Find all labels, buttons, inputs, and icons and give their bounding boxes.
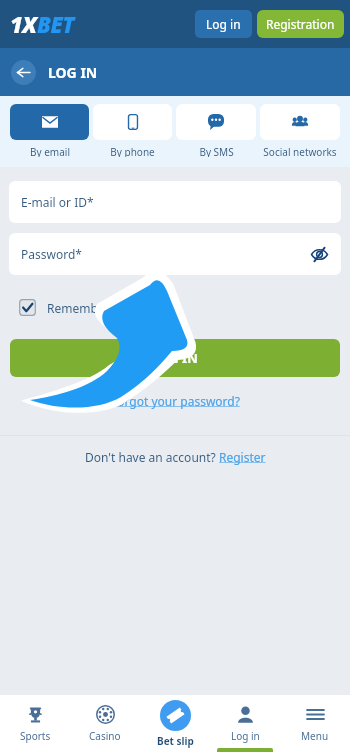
button[interactable]: Show password <box>307 242 331 266</box>
staticText: 1X <box>10 9 37 39</box>
staticText: By SMS <box>199 145 234 157</box>
button[interactable]: Forgot your password? <box>111 393 240 409</box>
staticText: Casino <box>89 729 121 743</box>
button[interactable]: Register <box>219 449 266 465</box>
staticText: Social networks <box>263 145 337 157</box>
staticText: By phone <box>110 145 155 157</box>
button[interactable]: Sports <box>0 695 70 752</box>
button[interactable]: Social networks <box>260 104 340 157</box>
staticText: BET <box>37 9 74 39</box>
staticText: By email <box>30 145 70 157</box>
staticText: Menu <box>301 729 329 743</box>
button[interactable]: Password* <box>9 233 341 275</box>
staticText: LOG IN <box>152 349 198 367</box>
staticText: Log in <box>206 16 241 32</box>
button[interactable]: LOG IN <box>10 339 340 377</box>
button[interactable]: By SMS <box>176 104 256 157</box>
button[interactable]: By phone <box>93 104 172 157</box>
staticText: Password* <box>21 246 82 262</box>
staticText: E-mail or ID* <box>21 194 94 210</box>
staticText: Remember me <box>47 300 131 316</box>
button[interactable]: Casino <box>70 695 140 752</box>
staticText: Registration <box>266 16 335 32</box>
staticText: Sports <box>20 729 51 743</box>
staticText: LOG IN <box>48 63 98 82</box>
button[interactable]: E-mail or ID* <box>9 181 341 223</box>
button[interactable]: By email <box>10 104 89 157</box>
button[interactable]: Bet slip <box>140 695 210 752</box>
button[interactable]: Log in <box>210 695 280 752</box>
staticText: Log in <box>231 729 260 743</box>
button[interactable]: Menu <box>280 695 350 752</box>
staticText: Bet slip <box>157 734 194 748</box>
button[interactable]: Registration <box>257 10 344 38</box>
staticText: Don't have an account? <box>85 449 219 465</box>
button[interactable]: Back <box>11 60 36 85</box>
button[interactable]: Remember me <box>19 299 131 316</box>
button[interactable]: Log in <box>195 10 252 38</box>
